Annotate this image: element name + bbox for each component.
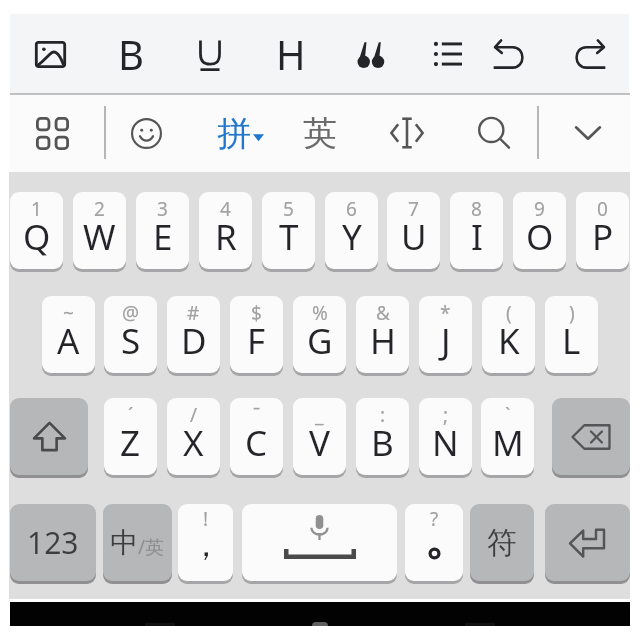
staticText: ) — [569, 300, 575, 326]
staticText: 4 — [220, 196, 231, 222]
button[interactable]: * — [419, 296, 472, 373]
staticText: 8 — [471, 196, 482, 222]
staticText: 2 — [94, 196, 105, 222]
button[interactable]: B — [100, 7, 162, 101]
staticText: H — [370, 317, 396, 365]
button[interactable]: : — [356, 398, 409, 475]
staticText: $ — [251, 300, 262, 326]
button[interactable]: ; — [419, 398, 472, 475]
staticText: Z — [120, 419, 141, 467]
staticText: K — [498, 317, 520, 365]
button[interactable]: Backspace — [552, 398, 630, 475]
button[interactable]: 4 — [199, 192, 252, 269]
staticText: ˉ — [253, 402, 261, 428]
button[interactable]: $ — [230, 296, 283, 373]
button[interactable]: Move cursor — [376, 94, 438, 172]
button[interactable]: Keyboard layout — [17, 94, 87, 172]
button[interactable]: Insert image — [19, 7, 81, 101]
staticText: I — [471, 213, 483, 261]
button[interactable]: 123 — [10, 504, 96, 581]
staticText: ? — [430, 506, 439, 532]
button[interactable]: ( — [482, 296, 535, 373]
staticText: H — [276, 27, 306, 81]
button[interactable]: H — [260, 7, 322, 101]
button[interactable]: Space — [242, 504, 397, 581]
button[interactable]: ! — [178, 504, 233, 581]
button[interactable]: ˉ — [230, 398, 283, 475]
button[interactable]: ) — [545, 296, 598, 373]
staticText: F — [247, 317, 266, 365]
button[interactable]: 中 — [103, 504, 172, 581]
button[interactable]: 2 — [73, 192, 126, 269]
staticText: G — [307, 317, 333, 365]
staticText: R — [215, 213, 237, 261]
button[interactable]: _ — [293, 398, 346, 475]
button[interactable]: Shift — [10, 398, 88, 475]
button[interactable]: ˋ — [481, 398, 534, 475]
staticText: & — [376, 300, 390, 326]
button[interactable]: Underline — [179, 7, 241, 101]
button[interactable]: Bulleted list — [417, 7, 479, 101]
staticText: : — [380, 402, 386, 428]
button[interactable]: Emoji — [115, 94, 177, 172]
staticText: / — [190, 402, 198, 428]
button[interactable]: 8 — [450, 192, 503, 269]
staticText: 1 — [31, 196, 42, 222]
button[interactable]: 5 — [262, 192, 315, 269]
staticText: 0 — [597, 196, 608, 222]
button[interactable]: Undo — [479, 7, 541, 101]
button[interactable]: / — [167, 398, 220, 475]
button[interactable]: 7 — [387, 192, 440, 269]
staticText: V — [309, 419, 331, 467]
button[interactable]: 符 — [470, 504, 534, 581]
button[interactable]: & — [356, 296, 409, 373]
staticText: M — [492, 419, 524, 467]
button[interactable]: ~ — [42, 296, 95, 373]
button[interactable]: % — [293, 296, 346, 373]
button[interactable]: Hide keyboard — [557, 94, 619, 172]
button[interactable]: @ — [104, 296, 157, 373]
button[interactable]: Redo — [558, 7, 620, 101]
button[interactable]: 9 — [513, 192, 566, 269]
staticText: ， — [190, 525, 222, 565]
staticText: 中 — [110, 525, 138, 560]
staticText: Q — [23, 213, 51, 261]
staticText: A — [57, 317, 80, 365]
staticText: 符 — [487, 524, 517, 562]
button[interactable]: Search — [463, 94, 525, 172]
staticText: 123 — [27, 522, 79, 563]
staticText: 9 — [534, 196, 545, 222]
staticText: 英 — [303, 112, 337, 155]
button[interactable]: 1 — [10, 192, 63, 269]
button[interactable]: Block quote — [339, 7, 401, 101]
staticText: ˋ — [505, 402, 511, 428]
staticText: 3 — [157, 196, 168, 222]
button[interactable]: 0 — [576, 192, 629, 269]
staticText: Y — [342, 213, 362, 261]
button[interactable]: 6 — [325, 192, 378, 269]
staticText: ˊ — [128, 402, 134, 428]
button[interactable]: ˊ — [104, 398, 157, 475]
staticText: ; — [443, 402, 449, 428]
button[interactable]: 3 — [136, 192, 189, 269]
staticText: O — [526, 213, 554, 261]
staticText: J — [441, 317, 451, 365]
staticText: T — [279, 213, 299, 261]
button[interactable]: # — [167, 296, 220, 373]
button[interactable]: 英 — [288, 94, 352, 172]
staticText: 拼 — [217, 112, 251, 155]
staticText: E — [153, 213, 173, 261]
button[interactable]: Enter — [545, 504, 630, 581]
staticText: _ — [315, 402, 324, 428]
button[interactable]: Home — [312, 622, 328, 626]
staticText: ~ — [63, 300, 74, 326]
staticText: * — [440, 300, 451, 326]
button[interactable]: ? — [405, 504, 463, 581]
staticText: B — [118, 27, 144, 81]
button[interactable]: 拼 — [205, 94, 275, 172]
staticText: W — [83, 213, 116, 261]
staticText: N — [432, 419, 459, 467]
staticText: U — [401, 213, 427, 261]
